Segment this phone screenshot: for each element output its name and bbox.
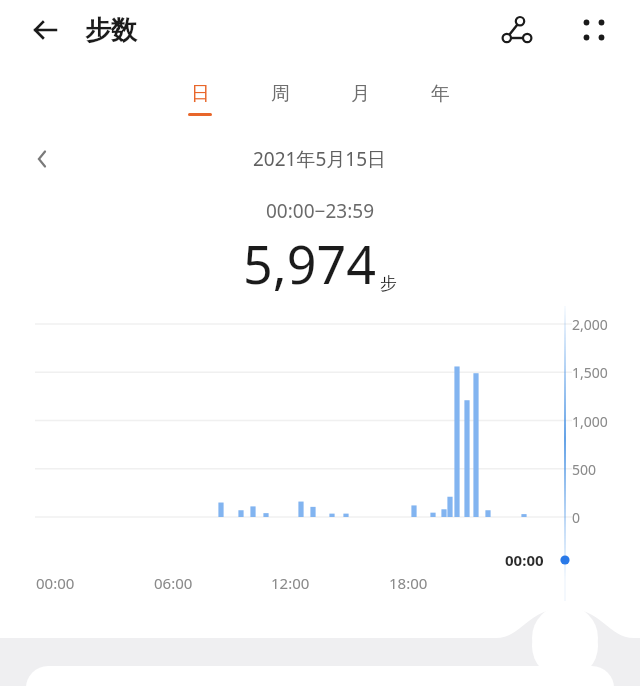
staticText: 00:00−23:59: [266, 198, 374, 224]
button[interactable]: 日: [176, 82, 224, 116]
staticText: 12:00: [271, 573, 310, 593]
button[interactable]: 周: [256, 82, 304, 113]
staticText: 00:00: [505, 550, 544, 570]
staticText: 500: [572, 460, 632, 479]
staticText: 1,000: [572, 412, 632, 431]
staticText: 年: [431, 82, 450, 106]
button[interactable]: Previous day: [26, 142, 60, 176]
staticText: 18:00: [389, 573, 428, 593]
button[interactable]: Add record: [532, 605, 598, 671]
button[interactable]: 年: [416, 82, 464, 113]
staticText: 2,000: [572, 315, 632, 334]
staticText: 步: [380, 273, 397, 294]
button[interactable]: More options: [574, 10, 614, 50]
staticText: 5,974: [243, 228, 376, 299]
button[interactable]: Share: [496, 10, 536, 50]
staticText: 周: [271, 82, 290, 106]
staticText: 月: [351, 82, 370, 106]
button[interactable]: 月: [336, 82, 384, 113]
staticText: 0: [572, 508, 632, 527]
staticText: 1,500: [572, 363, 632, 382]
staticText: 00:00: [36, 573, 75, 593]
staticText: 步数: [85, 14, 137, 47]
staticText: 日: [191, 82, 210, 106]
button[interactable]: Back: [26, 11, 64, 49]
staticText: 06:00: [154, 573, 193, 593]
staticText: 2021年5月15日: [253, 146, 387, 172]
